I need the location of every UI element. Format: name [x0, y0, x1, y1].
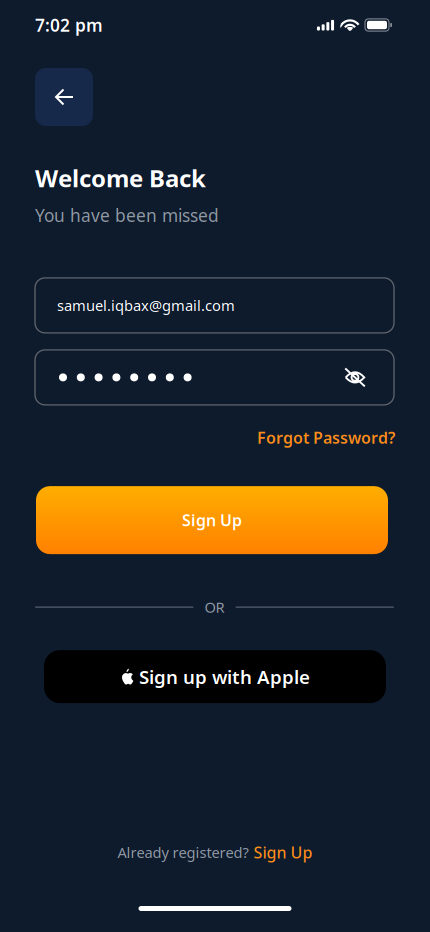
staticText: samuel.iqbax@gmail.com — [57, 296, 235, 315]
button[interactable]: Forgot Password? — [257, 427, 395, 448]
button[interactable]: Sign up with Apple — [44, 650, 386, 703]
staticText: You have been missed — [35, 204, 219, 227]
staticText: OR — [204, 597, 224, 617]
staticText: Forgot Password? — [257, 427, 395, 448]
staticText: Sign Up — [253, 842, 312, 863]
staticText: Sign Up — [182, 509, 242, 531]
button[interactable]: Sign Up — [253, 842, 312, 863]
staticText: Welcome Back — [35, 162, 206, 194]
staticText: Sign up with Apple — [139, 664, 310, 689]
button[interactable]: Back — [35, 68, 93, 126]
button[interactable]: Sign Up — [36, 486, 388, 554]
button[interactable]: Show password — [343, 366, 367, 388]
staticText: 7:02 pm — [35, 13, 103, 36]
staticText: Already registered? — [117, 843, 248, 862]
